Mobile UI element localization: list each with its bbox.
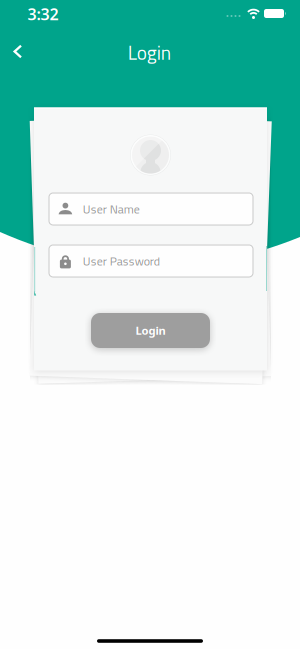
staticText: User Name [83, 200, 140, 218]
staticText: Login [135, 323, 165, 338]
button[interactable]: Login [91, 313, 210, 348]
button[interactable]: User Password [49, 245, 253, 277]
staticText: Login [128, 38, 171, 67]
button[interactable]: Back [7, 40, 29, 62]
staticText: 3:32 [27, 3, 58, 25]
staticText: User Password [83, 252, 160, 270]
button[interactable]: User Name [49, 193, 253, 225]
